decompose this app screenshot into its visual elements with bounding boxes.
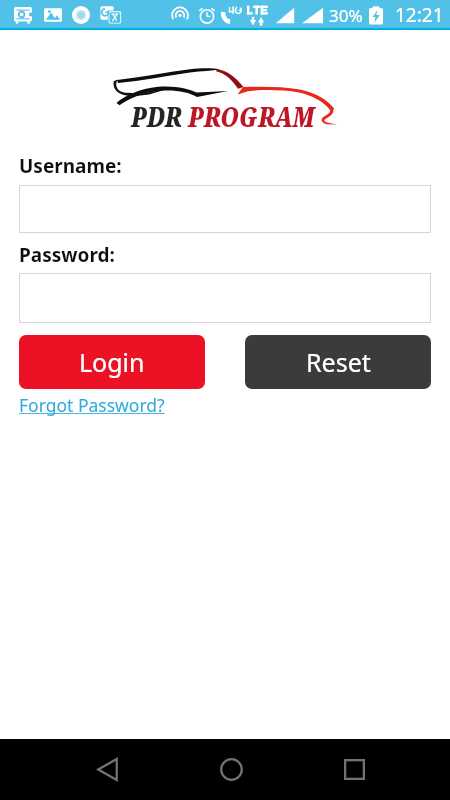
button[interactable]: Password input field xyxy=(19,273,431,323)
staticText: Reset xyxy=(306,345,371,379)
staticText: PROGRAM xyxy=(188,97,315,135)
staticText: Password: xyxy=(19,242,115,263)
button[interactable]: Back xyxy=(80,742,134,796)
button[interactable]: Home xyxy=(204,742,258,796)
staticText: 12:21 xyxy=(395,2,444,28)
staticText: Login xyxy=(79,345,145,379)
button[interactable]: Forgot Password? xyxy=(19,393,165,417)
button[interactable]: Reset xyxy=(245,335,431,389)
staticText: Username: xyxy=(19,153,122,174)
staticText: PDR xyxy=(131,97,188,135)
button[interactable]: Login xyxy=(19,335,205,389)
staticText: Forgot Password? xyxy=(19,393,165,417)
button[interactable]: Recent apps xyxy=(327,742,381,796)
staticText: 30% xyxy=(329,4,363,27)
button[interactable]: Username input field xyxy=(19,185,431,233)
